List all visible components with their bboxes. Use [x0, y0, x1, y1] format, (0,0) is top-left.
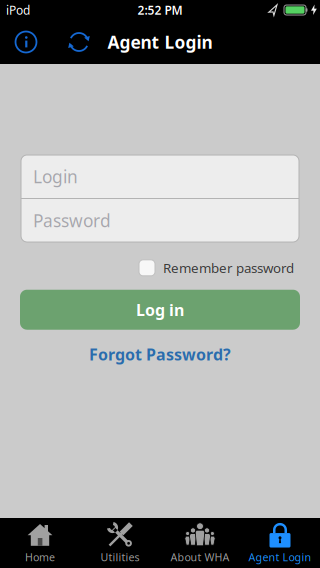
staticText: Utilities: [100, 550, 139, 564]
button[interactable]: Remember password: [139, 259, 294, 277]
staticText: Login: [33, 165, 78, 188]
staticText: Home: [25, 550, 55, 564]
staticText: iPod: [6, 2, 30, 18]
staticText: Agent Login: [107, 30, 212, 53]
staticText: Forgot Password?: [89, 344, 231, 365]
staticText: About WHA: [170, 550, 229, 564]
button[interactable]: About WHA: [160, 518, 240, 568]
button[interactable]: Log in: [20, 290, 300, 330]
button[interactable]: Info: [0, 30, 38, 54]
button[interactable]: Home: [0, 518, 80, 568]
button[interactable]: Agent Login: [240, 518, 320, 568]
button[interactable]: Login: [21, 155, 299, 198]
button[interactable]: Forgot Password?: [89, 344, 231, 365]
staticText: 2:52 PM: [137, 2, 182, 18]
staticText: Password: [33, 209, 111, 232]
button[interactable]: Utilities: [80, 518, 160, 568]
staticText: Remember password: [163, 259, 294, 277]
button[interactable]: Password: [21, 199, 299, 242]
staticText: Log in: [136, 299, 184, 320]
staticText: Agent Login: [248, 550, 311, 564]
button[interactable]: Refresh: [38, 30, 91, 54]
